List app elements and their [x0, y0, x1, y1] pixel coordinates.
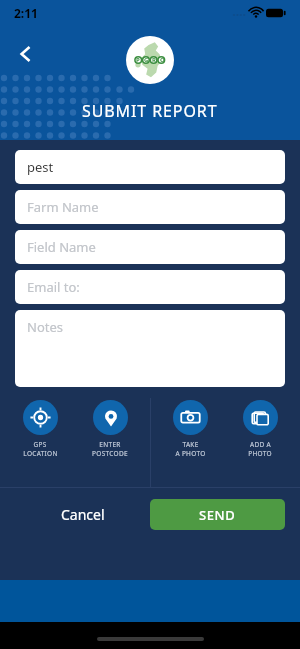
staticText: 2:11 [14, 5, 38, 21]
staticText: O [160, 56, 165, 64]
staticText: TAKE [182, 440, 199, 449]
button[interactable]: Cancel [45, 497, 121, 532]
button[interactable]: Back [8, 36, 44, 72]
staticText: SUBMIT REPORT [82, 100, 218, 122]
button[interactable]: GPS Location [9, 392, 71, 458]
button[interactable]: Field Name [15, 230, 285, 264]
staticText: Field Name [27, 238, 96, 256]
staticText: R [152, 56, 156, 64]
staticText: G [144, 56, 149, 64]
button[interactable]: Take a Photo [159, 392, 221, 458]
button[interactable]: Enter Postcode [79, 392, 141, 458]
button[interactable]: Notes [15, 310, 285, 387]
staticText: ENTER [99, 440, 121, 449]
button[interactable]: pest [15, 150, 285, 184]
staticText: pest [27, 158, 54, 176]
button[interactable]: Farm Name [15, 190, 285, 224]
staticText: POSTCODE [92, 449, 128, 458]
staticText: A PHOTO [175, 449, 206, 458]
staticText: Cancel [61, 505, 105, 524]
staticText: GPS [33, 440, 47, 449]
staticText: ADD A [250, 440, 271, 449]
button[interactable]: SEND [150, 499, 285, 530]
staticText: Email to: [27, 278, 80, 296]
staticText: Notes [27, 318, 63, 336]
staticText: LOCATION [23, 449, 58, 458]
staticText: PHOTO [248, 449, 272, 458]
staticText: Farm Name [27, 198, 99, 216]
staticText: P [136, 56, 140, 64]
staticText: SEND [199, 506, 236, 524]
button[interactable]: Add a Photo [229, 392, 291, 458]
button[interactable]: Email to: [15, 270, 285, 304]
